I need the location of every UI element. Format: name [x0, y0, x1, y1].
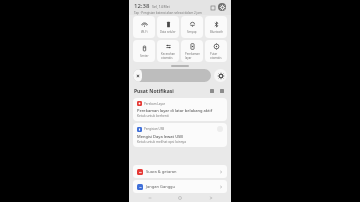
button[interactable]: Suara & getaran — [133, 165, 227, 178]
button[interactable]: Senyap — [181, 16, 203, 38]
staticText: Mengisi Daya lewat USB — [137, 134, 183, 139]
staticText: Ketuk untuk berhenti — [137, 114, 169, 118]
button[interactable]: Settings — [218, 3, 226, 11]
button[interactable]: Putar otomatis — [205, 40, 227, 62]
button[interactable]: Perekam Layar — [133, 98, 227, 121]
staticText: 12:38 — [134, 2, 150, 10]
button[interactable]: Settings — [214, 69, 227, 82]
staticText: Pengisian USB — [144, 127, 165, 131]
button[interactable]: Kecerahan otomatis — [157, 40, 179, 62]
staticText: Data seluler — [160, 30, 176, 34]
staticText: Kecerahan otomatis — [161, 52, 175, 59]
button[interactable]: Expand — [217, 126, 223, 132]
staticText: Bluetooth — [210, 30, 223, 34]
button[interactable]: Clear all — [218, 87, 226, 95]
button[interactable]: Perekaman layar — [181, 40, 203, 62]
staticText: Putar otomatis — [210, 52, 222, 59]
staticText: Wi-Fi — [141, 30, 148, 34]
button[interactable]: Senter — [133, 40, 155, 62]
button[interactable]: Brightness — [133, 69, 211, 82]
button[interactable]: Home — [170, 193, 190, 202]
staticText: Sel, 14 Mei — [152, 4, 170, 9]
button[interactable]: Pengisian USB — [133, 123, 227, 147]
staticText: Perekaman layar di latar belakang aktif — [137, 108, 213, 113]
staticText: Jangan Ganggu — [146, 184, 176, 189]
staticText: Perekam Layar — [144, 102, 165, 106]
button[interactable]: Back — [201, 193, 221, 202]
staticText: Senyap — [187, 30, 197, 34]
staticText: Tap · Pengisian baterai akan selesai dal… — [134, 11, 202, 15]
button[interactable]: Data seluler — [157, 16, 179, 38]
button[interactable]: Wi-Fi — [133, 16, 155, 38]
staticText: Ketuk untuk melihat opsi lainnya — [137, 140, 187, 144]
button[interactable]: Edit — [209, 4, 216, 11]
staticText: Pusat Notifikasi — [134, 88, 174, 95]
staticText: Suara & getaran — [146, 169, 177, 174]
button[interactable]: Bluetooth — [205, 16, 227, 38]
button[interactable]: Jangan Ganggu — [133, 180, 227, 193]
button[interactable]: History — [208, 87, 216, 95]
staticText: Senter — [140, 54, 149, 58]
staticText: Perekaman layar — [185, 52, 200, 59]
